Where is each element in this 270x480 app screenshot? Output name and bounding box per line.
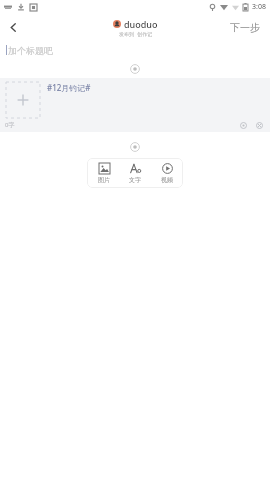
button[interactable]: Add image: [0, 78, 270, 132]
staticText: 下一步: [230, 21, 260, 34]
button[interactable]: Add block: [128, 140, 142, 154]
button[interactable]: 下一步: [220, 16, 270, 39]
staticText: 图片: [98, 176, 110, 184]
button[interactable]: Insert video: [152, 163, 182, 184]
staticText: duoduo: [124, 18, 158, 30]
button[interactable]: Add block: [128, 62, 142, 76]
button[interactable]: 加个标题吧: [0, 40, 270, 60]
button[interactable]: Insert image: [89, 163, 119, 184]
button[interactable]: Close: [253, 119, 265, 131]
button[interactable]: Add image: [6, 82, 40, 118]
staticText: 创作记: [137, 31, 152, 37]
button[interactable]: Back: [0, 14, 26, 40]
staticText: 3:08: [252, 2, 266, 12]
staticText: 视频: [161, 176, 173, 184]
button[interactable]: Settings: [237, 119, 249, 131]
staticText: 文字: [129, 176, 141, 184]
button[interactable]: Insert text: [120, 163, 150, 184]
staticText: #12月钓记#: [47, 82, 91, 93]
staticText: 发布到: [119, 31, 134, 37]
staticText: 0字: [5, 121, 15, 129]
staticText: 加个标题吧: [8, 45, 53, 56]
